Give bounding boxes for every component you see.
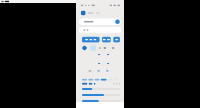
button[interactable]: Assistant bbox=[81, 11, 85, 15]
button[interactable]: Back bbox=[1, 1, 4, 2]
button[interactable]: Action bbox=[102, 37, 111, 42]
button[interactable] bbox=[79, 18, 121, 25]
button[interactable]: Sparkle bbox=[82, 45, 87, 50]
button[interactable]: Action bbox=[113, 37, 120, 42]
button[interactable]: Action bbox=[82, 37, 99, 42]
button[interactable] bbox=[79, 27, 121, 33]
